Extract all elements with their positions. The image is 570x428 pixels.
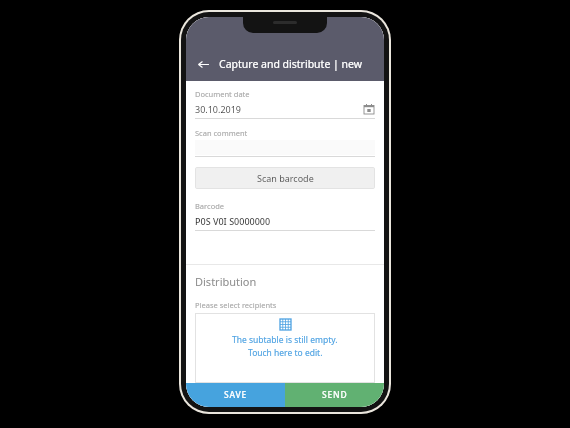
button[interactable]: The subtable is still empty. — [195, 313, 375, 383]
button[interactable]: P0S V0I S0000000 — [195, 214, 375, 227]
button[interactable]: Scan barcode — [195, 167, 375, 189]
button[interactable]: SEND — [285, 383, 384, 407]
staticText: SAVE — [224, 389, 248, 401]
staticText: Barcode — [195, 201, 225, 211]
button[interactable]: Pick date — [363, 103, 375, 115]
staticText: Touch here to edit. — [248, 347, 323, 359]
button[interactable]: SAVE — [186, 383, 285, 407]
button[interactable]: Back — [193, 54, 213, 74]
staticText: The subtable is still empty. — [232, 334, 338, 346]
staticText: P0S V0I S0000000 — [195, 215, 375, 227]
staticText: Distribution — [195, 274, 257, 289]
staticText: SEND — [322, 389, 348, 401]
staticText: Please select recipients — [195, 300, 277, 310]
button[interactable]: 30.10.2019 — [195, 102, 375, 115]
staticText: Capture and distribute | new — [219, 57, 362, 71]
staticText: Scan barcode — [257, 172, 314, 184]
staticText: Scan comment — [195, 128, 248, 138]
staticText: Document date — [195, 89, 250, 99]
staticText: 30.10.2019 — [195, 103, 363, 115]
